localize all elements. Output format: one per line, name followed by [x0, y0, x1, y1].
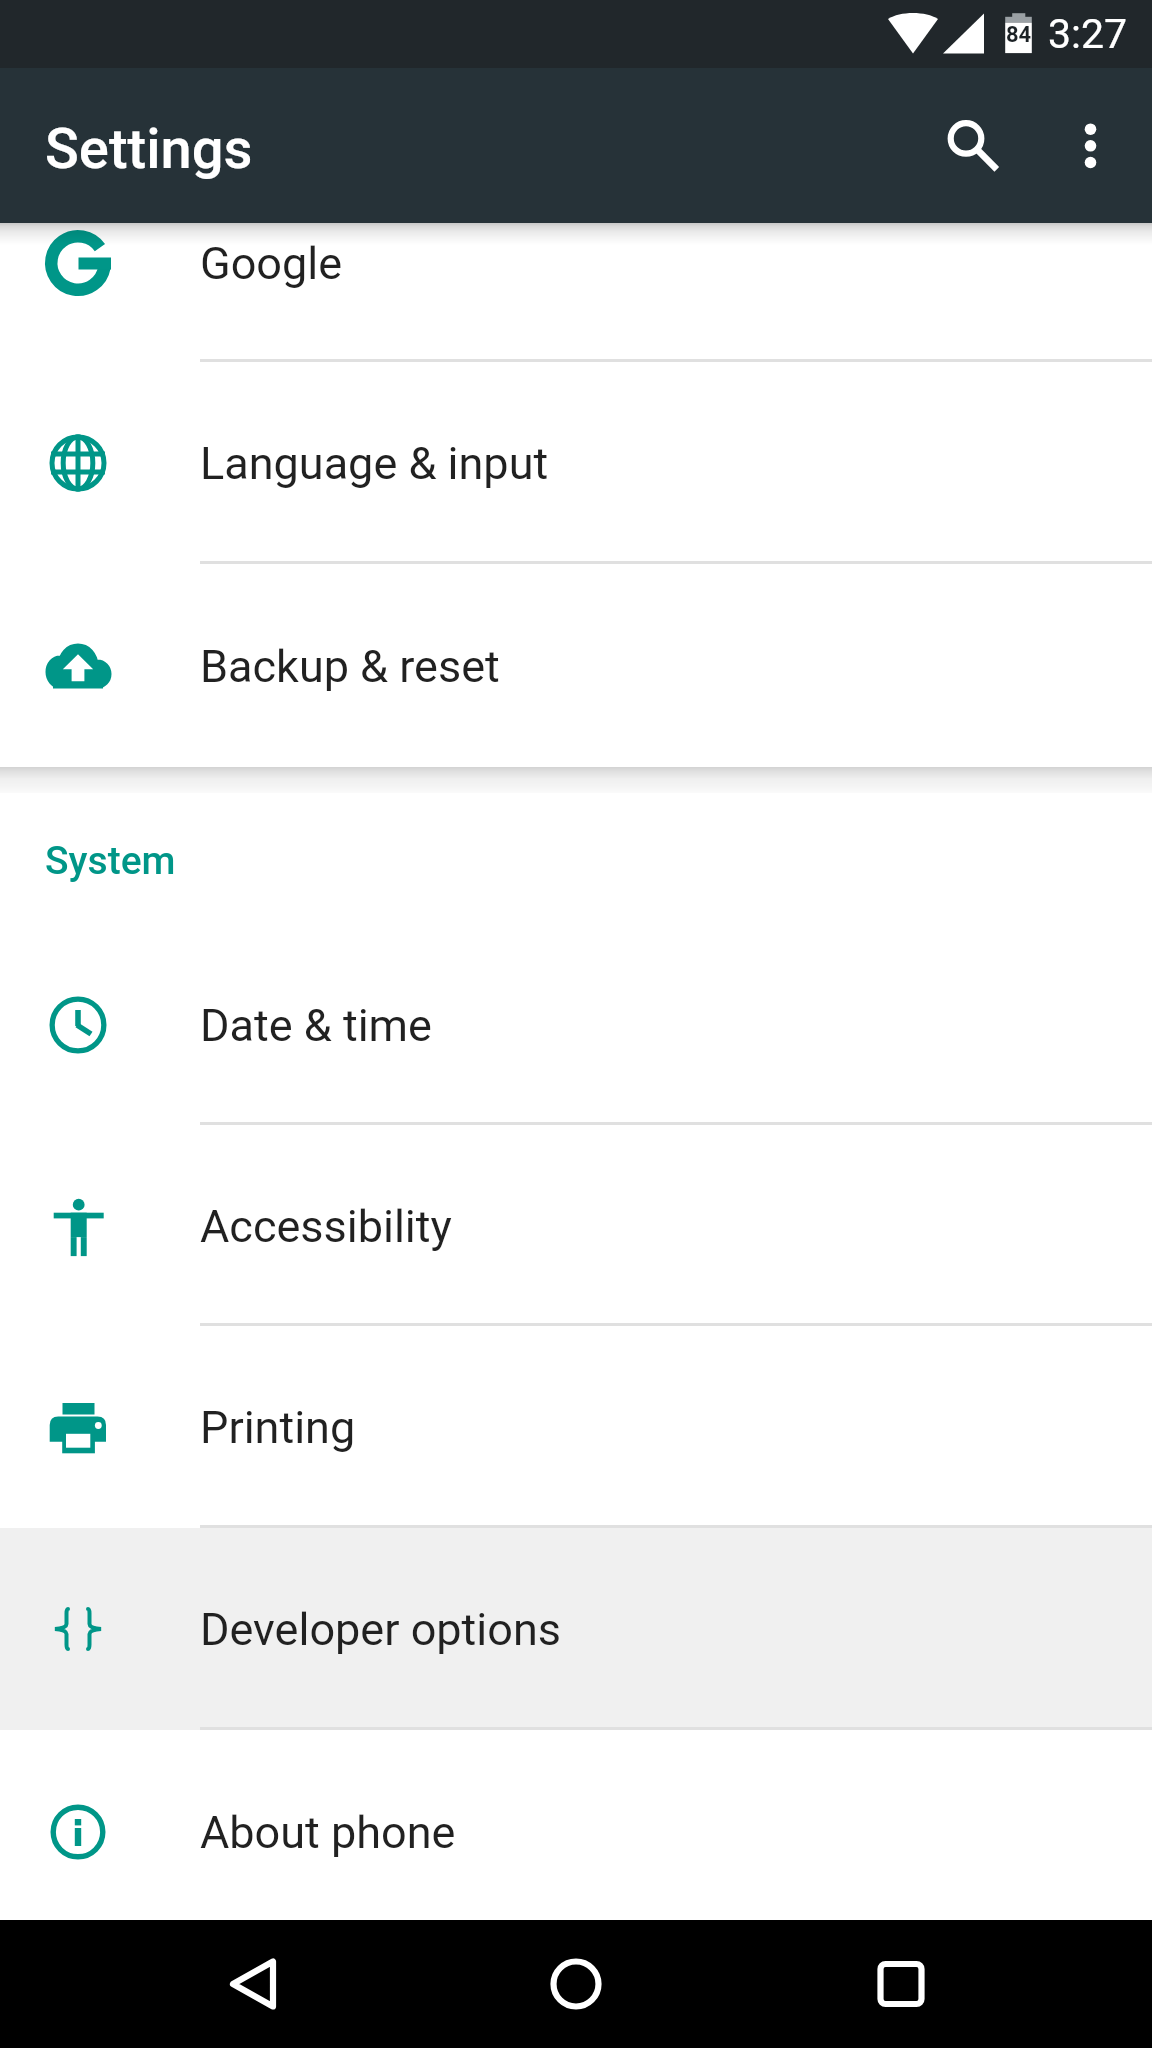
button[interactable]: Backup & reset — [0, 564, 1152, 767]
staticText: About phone — [200, 1806, 456, 1859]
staticText: Developer options — [200, 1603, 561, 1656]
staticText: 3:27 — [1048, 10, 1128, 58]
staticText: Accessibility — [200, 1200, 452, 1253]
staticText: Printing — [200, 1401, 356, 1454]
button[interactable]: Accessibility — [0, 1125, 1152, 1326]
staticText: Date & time — [200, 999, 432, 1052]
button[interactable]: Back — [189, 1920, 317, 2048]
button[interactable]: More options — [1034, 68, 1146, 180]
staticText: 84 — [999, 22, 1038, 48]
button[interactable]: Search — [910, 68, 1022, 180]
button[interactable]: Home — [512, 1920, 640, 2048]
staticText: Google — [200, 237, 343, 290]
staticText: System — [45, 838, 176, 884]
button[interactable]: Google — [0, 223, 1152, 362]
staticText: Language & input — [200, 437, 549, 490]
staticText: Settings — [45, 116, 253, 182]
button[interactable]: Developer options — [0, 1528, 1152, 1730]
button[interactable]: Date & time — [0, 925, 1152, 1125]
button[interactable]: Recent apps — [837, 1920, 965, 2048]
button[interactable]: About phone — [0, 1730, 1152, 1920]
button[interactable]: Printing — [0, 1326, 1152, 1528]
button[interactable]: Language & input — [0, 362, 1152, 564]
staticText: Backup & reset — [200, 640, 500, 693]
